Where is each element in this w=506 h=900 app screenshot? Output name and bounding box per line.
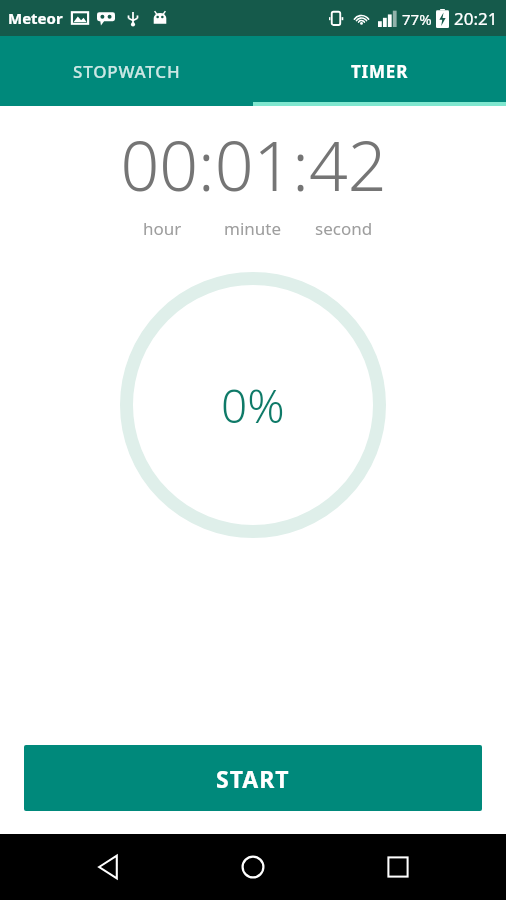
staticText: minute — [224, 217, 282, 240]
staticText: STOPWATCH — [73, 60, 181, 83]
button[interactable]: Back — [73, 834, 145, 900]
staticText: 20:21 — [454, 7, 498, 30]
staticText: hour — [143, 217, 182, 240]
button[interactable]: START — [24, 745, 482, 811]
staticText: Meteor — [8, 8, 63, 28]
staticText: TIMER — [351, 60, 409, 83]
staticText: START — [216, 763, 290, 794]
staticText: 77% — [402, 9, 432, 29]
button[interactable]: TIMER — [253, 36, 506, 106]
staticText: 00:01:42 — [120, 118, 387, 211]
button[interactable]: STOPWATCH — [0, 36, 253, 106]
staticText: 0% — [221, 374, 285, 437]
button[interactable]: Home — [217, 834, 289, 900]
staticText: second — [315, 217, 373, 240]
button[interactable]: Recent apps — [362, 834, 434, 900]
